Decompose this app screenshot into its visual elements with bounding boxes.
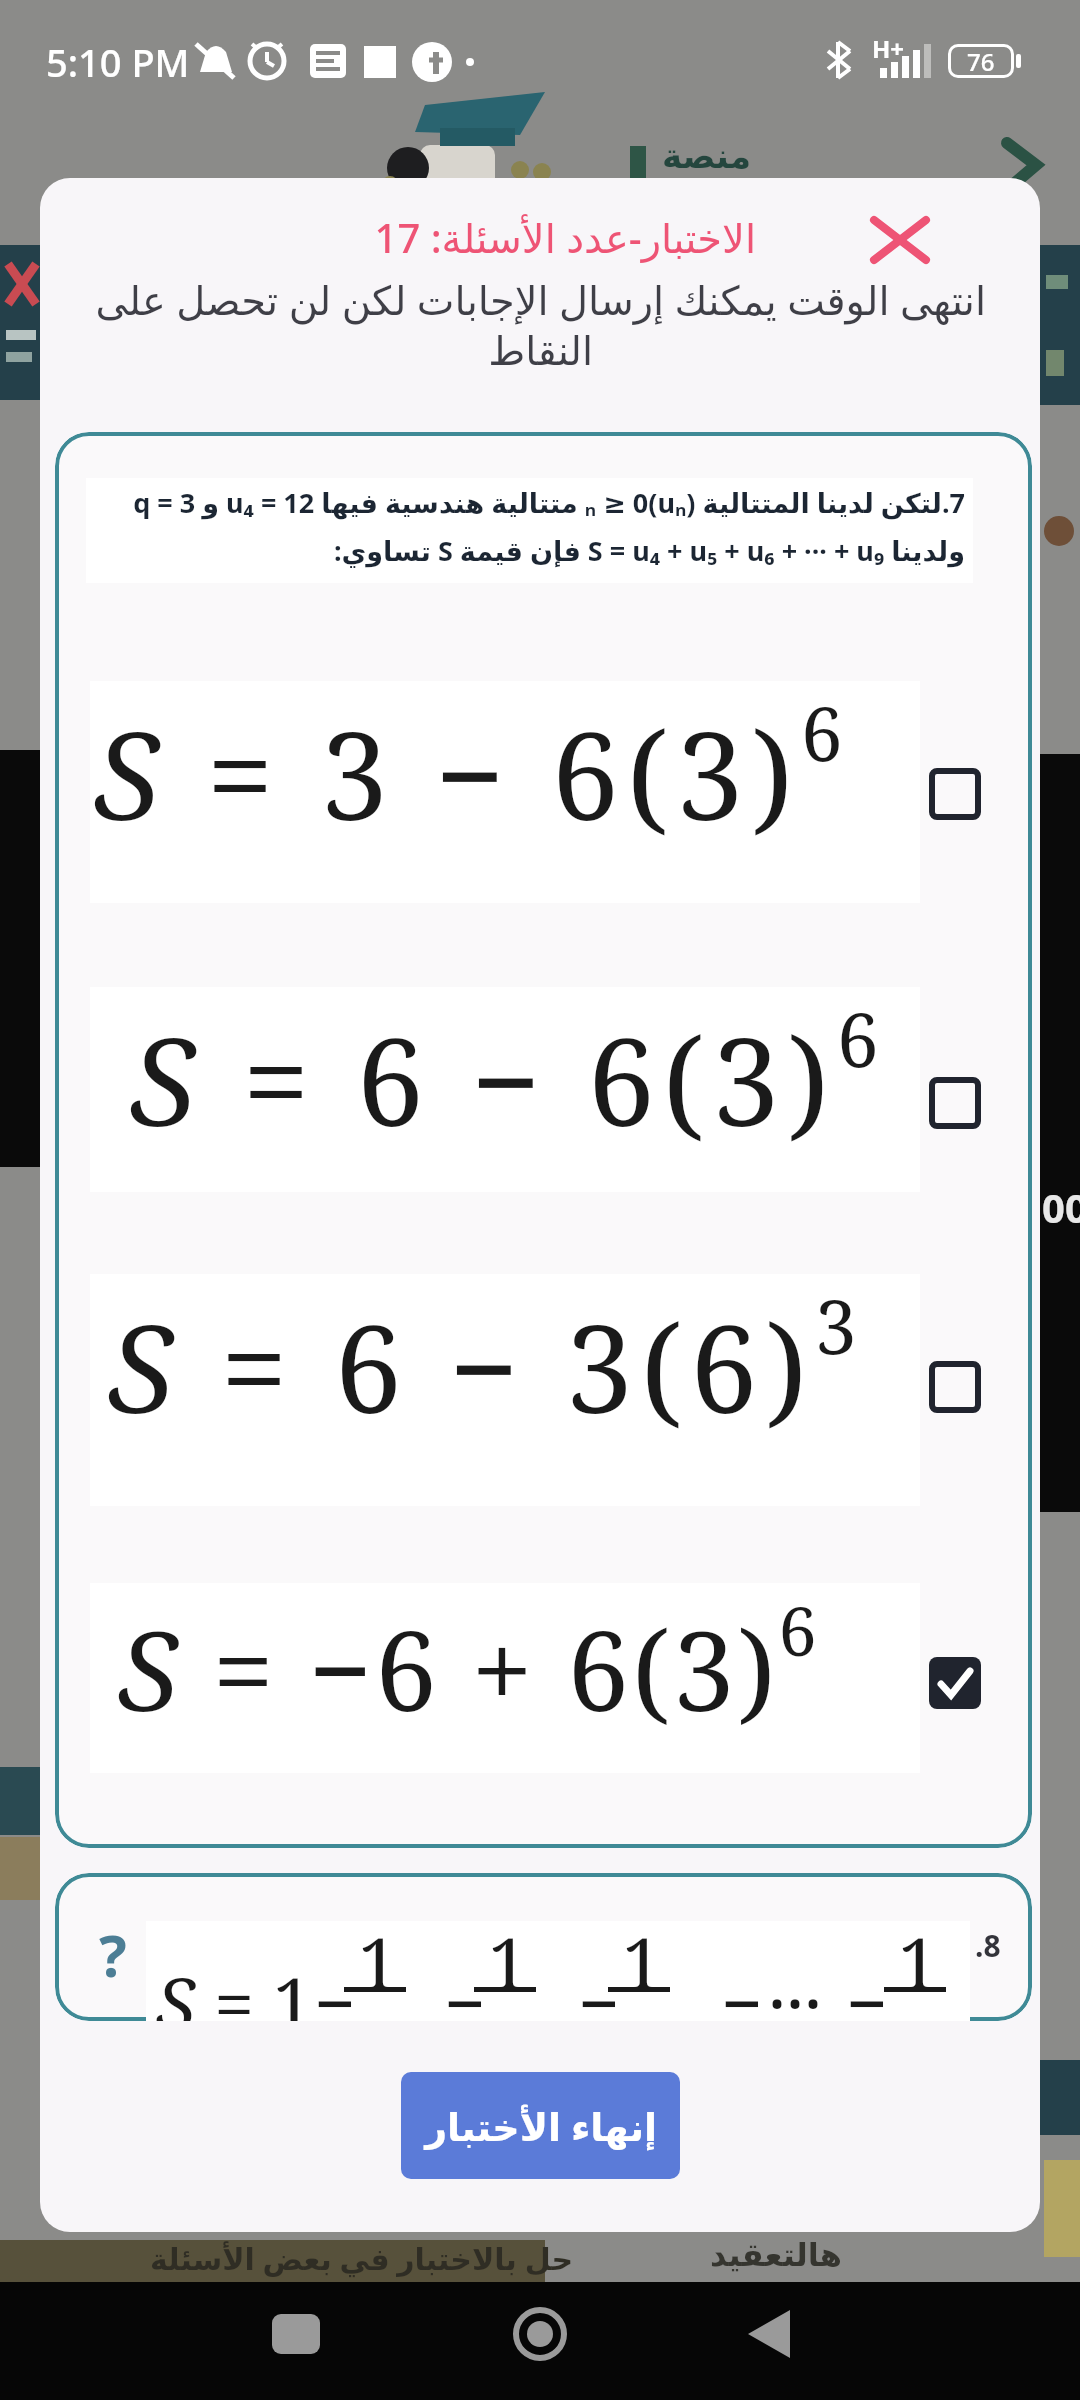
staticText: 00: [1042, 1180, 1080, 1234]
staticText: هالتعقيد: [710, 2236, 842, 2273]
button[interactable]: S = −6 + 6(3)6: [90, 1583, 920, 1773]
button[interactable]: S = 3 − 6(3)6: [90, 681, 920, 903]
staticText: النقاط: [488, 328, 593, 375]
staticText: حل بالاختبار في بعض الأسئلة: [150, 2238, 574, 2279]
staticText: 1: [898, 1913, 939, 2011]
staticText: .8: [975, 1925, 1001, 1966]
staticText: 1: [488, 1913, 529, 2011]
staticText: 1: [622, 1913, 663, 2011]
staticText: إنهاء الأختبار: [425, 2100, 657, 2152]
button[interactable]: [929, 1361, 981, 1413]
staticText: الاختبار-عدد الأسئلة: 17: [374, 210, 756, 264]
staticText: ?: [99, 1915, 127, 1994]
staticText: 76: [967, 45, 995, 78]
button[interactable]: [929, 768, 981, 820]
staticText: H+: [872, 32, 905, 65]
staticText: S = −6 + 6(3)6: [118, 1583, 820, 1743]
staticText: S = 3 − 6(3)6: [94, 681, 851, 855]
button[interactable]: [512, 2306, 568, 2362]
staticText: ···: [768, 1953, 822, 2021]
staticText: 5:10 PM: [46, 36, 190, 88]
staticText: انتهى الوقت يمكنك إرسال الإجابات لكن لن …: [95, 272, 986, 326]
staticText: −: [578, 1953, 620, 2021]
button[interactable]: [850, 196, 950, 278]
button[interactable]: إنهاء الأختبار: [401, 2072, 680, 2179]
button[interactable]: S = 6 − 6(3)6: [90, 987, 920, 1192]
staticText: ولدينا S = u₄ + u₅ + u₆ + ··· + u₉ فإن ق…: [86, 532, 965, 569]
staticText: 7.لتكن لدينا المتتالية (uₙ)ₙ ≥ 0 متتالية…: [86, 484, 965, 521]
staticText: منصة: [662, 136, 752, 176]
staticText: −: [846, 1953, 888, 2021]
button[interactable]: S = 6 − 3(6)3: [90, 1274, 920, 1506]
button[interactable]: [272, 2314, 320, 2354]
button[interactable]: [929, 1077, 981, 1129]
staticText: −: [444, 1953, 486, 2021]
staticText: −: [314, 1953, 356, 2021]
button[interactable]: [744, 2308, 796, 2360]
staticText: 1: [358, 1913, 399, 2011]
staticText: S = 1: [156, 1953, 314, 2021]
button[interactable]: [929, 1657, 981, 1709]
staticText: −: [721, 1953, 763, 2021]
staticText: S = 6 − 3(6)3: [108, 1274, 865, 1448]
staticText: S = 6 − 6(3)6: [130, 987, 887, 1161]
